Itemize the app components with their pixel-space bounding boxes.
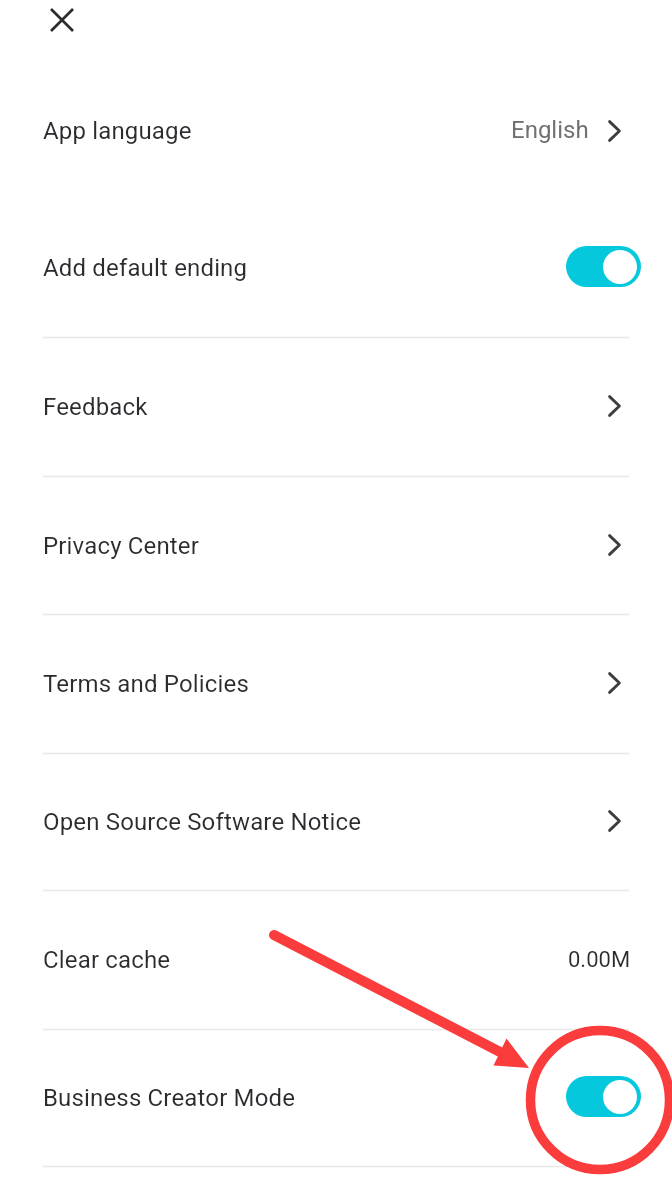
button[interactable]: Add default ending toggle, on [566,246,641,287]
staticText: Privacy Center [43,532,200,560]
button[interactable]: Clear cache [0,891,672,1029]
button[interactable]: Close [38,0,86,44]
button[interactable]: Feedback [0,338,672,476]
button[interactable]: Open Source Software Notice [0,754,672,890]
staticText: English [511,116,589,144]
staticText: 0.00M [568,947,631,973]
staticText: Add default ending [43,254,248,282]
staticText: Open Source Software Notice [43,808,362,836]
button[interactable]: Business Creator Mode [0,1030,672,1166]
button[interactable]: Business Creator Mode toggle, on [566,1076,641,1117]
button[interactable]: Terms and Policies [0,615,672,753]
staticText: App language [43,117,192,145]
button[interactable]: App language [0,62,672,199]
staticText: Clear cache [43,946,171,974]
staticText: Terms and Policies [43,670,249,698]
staticText: Business Creator Mode [43,1084,296,1112]
staticText: Feedback [43,393,148,421]
button[interactable]: Privacy Center [0,477,672,614]
button[interactable]: Add default ending [0,199,672,337]
